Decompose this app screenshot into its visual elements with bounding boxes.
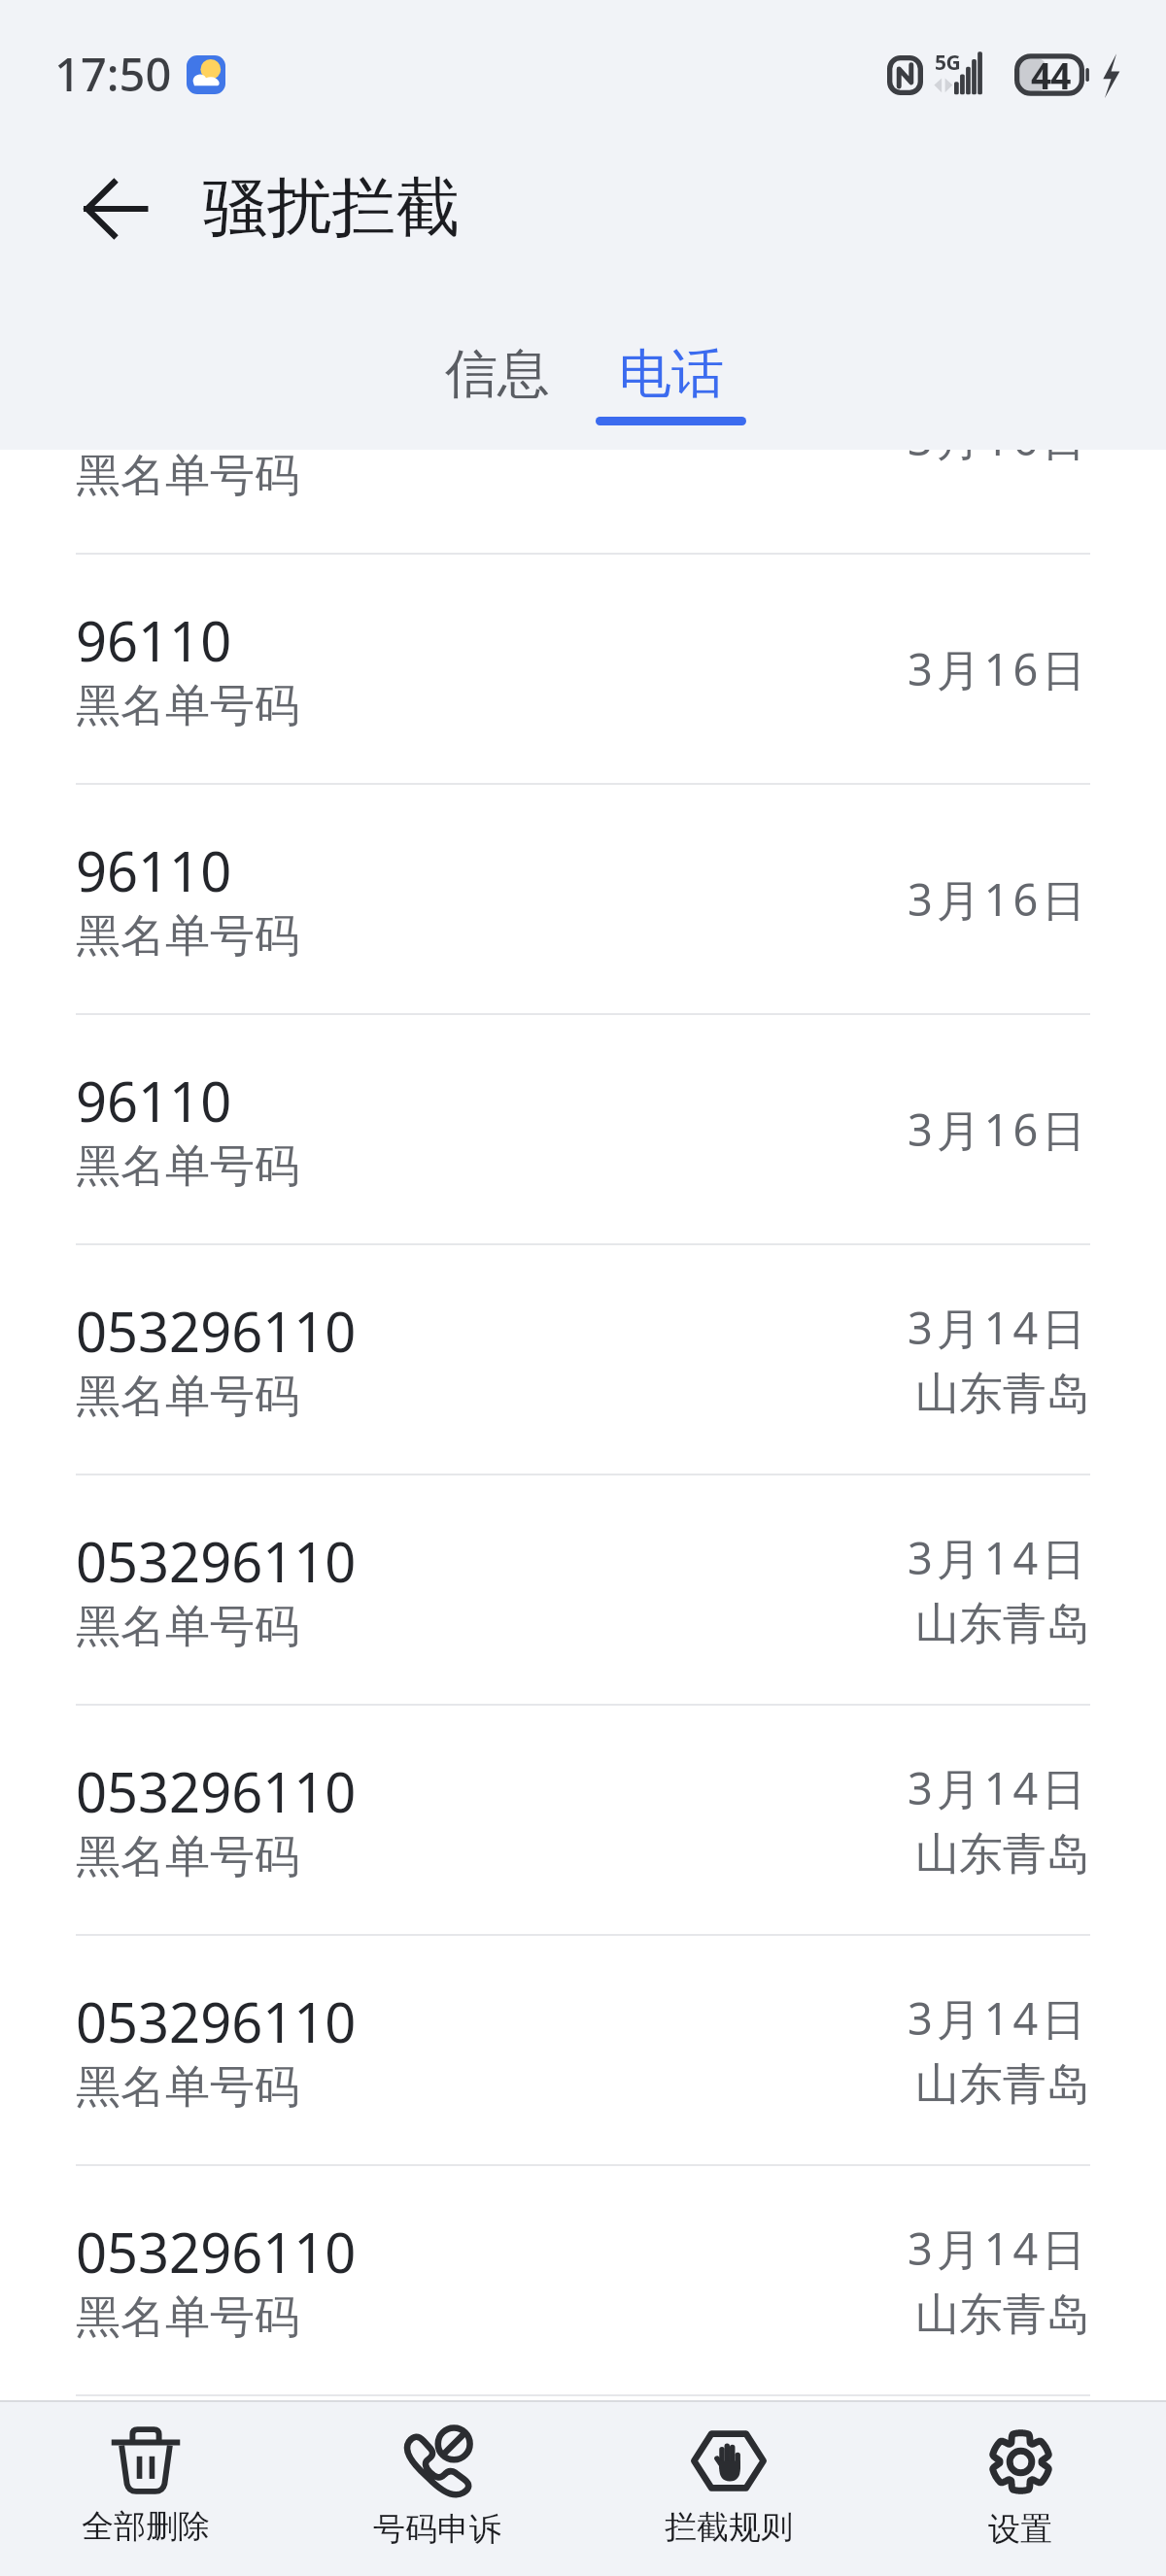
button[interactable]: 电话: [497, 317, 843, 450]
staticText: 全部删除: [82, 2506, 210, 2547]
staticText: 信息: [445, 341, 550, 407]
staticText: 053296110: [76, 2215, 357, 2288]
button[interactable]: 信息: [325, 317, 670, 450]
staticText: 黑名单号码: [76, 1599, 299, 1655]
staticText: 黑名单号码: [76, 2059, 299, 2116]
staticText: 设置: [988, 2509, 1052, 2550]
staticText: 3月14日: [908, 1988, 1090, 2048]
button[interactable]: 053296110: [0, 1706, 1166, 1934]
staticText: 号码申诉: [373, 2509, 501, 2550]
staticText: 黑名单号码: [76, 678, 299, 734]
button[interactable]: 053296110: [0, 2166, 1166, 2394]
staticText: 山东青岛: [915, 1367, 1090, 1422]
staticText: 17:50: [54, 43, 172, 105]
staticText: 黑名单号码: [76, 908, 299, 965]
staticText: 黑名单号码: [76, 1369, 299, 1425]
staticText: 3月16日: [908, 869, 1090, 929]
staticText: 5G: [935, 49, 961, 77]
button[interactable]: 号码申诉: [291, 2400, 583, 2576]
staticText: 山东青岛: [915, 1827, 1090, 1882]
staticText: 黑名单号码: [76, 450, 299, 504]
staticText: 3月14日: [908, 1298, 1090, 1357]
button[interactable]: 拦截规则: [583, 2400, 874, 2576]
button[interactable]: 053296110: [0, 1936, 1166, 2164]
staticText: 3月14日: [908, 1758, 1090, 1817]
staticText: 黑名单号码: [76, 1138, 299, 1195]
staticText: 黑名单号码: [76, 2289, 299, 2346]
staticText: 骚扰拦截: [203, 167, 460, 248]
staticText: 96110: [76, 603, 232, 677]
staticText: 3月16日: [908, 450, 1090, 468]
button[interactable]: 设置: [874, 2400, 1166, 2576]
button[interactable]: 96110: [0, 555, 1166, 783]
staticText: 拦截规则: [665, 2507, 793, 2548]
staticText: 3月16日: [908, 639, 1090, 698]
button[interactable]: 96110: [0, 1015, 1166, 1243]
staticText: 44: [1031, 51, 1071, 99]
button[interactable]: 053296110: [0, 1245, 1166, 1474]
button[interactable]: Back: [57, 152, 172, 266]
button[interactable]: 96110: [0, 785, 1166, 1013]
button[interactable]: 全部删除: [0, 2400, 291, 2576]
staticText: 3月14日: [908, 2219, 1090, 2278]
staticText: 96110: [76, 1064, 232, 1137]
staticText: 96110: [76, 833, 232, 907]
staticText: 053296110: [76, 1754, 357, 1828]
staticText: 黑名单号码: [76, 1829, 299, 1885]
staticText: 山东青岛: [915, 2288, 1090, 2343]
button[interactable]: 053296110: [0, 1475, 1166, 1704]
staticText: 3月14日: [908, 1528, 1090, 1587]
button[interactable]: 96110: [0, 450, 1166, 553]
staticText: 053296110: [76, 1294, 357, 1368]
staticText: 山东青岛: [915, 2057, 1090, 2113]
staticText: 3月16日: [908, 1100, 1090, 1159]
staticText: 山东青岛: [915, 1597, 1090, 1652]
staticText: 电话: [619, 341, 724, 407]
staticText: 053296110: [76, 1984, 357, 2058]
staticText: 053296110: [76, 1524, 357, 1598]
